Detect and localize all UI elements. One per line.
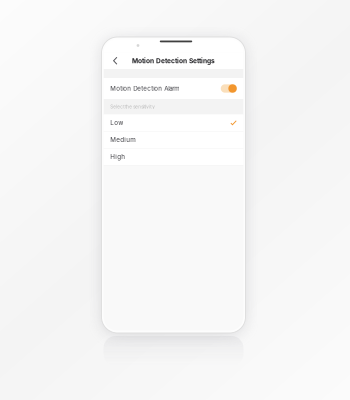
button[interactable]: Motion Detection Alarm: [104, 78, 243, 99]
staticText: Select the sensitivity: [110, 104, 155, 109]
staticText: Motion Detection Alarm: [110, 85, 179, 92]
staticText: Motion Detection Settings: [132, 57, 215, 65]
staticText: Medium: [110, 136, 135, 144]
button[interactable]: Medium: [104, 131, 243, 148]
staticText: Low: [110, 119, 123, 127]
button[interactable]: Low: [104, 114, 243, 131]
button[interactable]: High: [104, 148, 243, 165]
button[interactable]: Back: [107, 53, 124, 68]
staticText: High: [110, 153, 125, 161]
